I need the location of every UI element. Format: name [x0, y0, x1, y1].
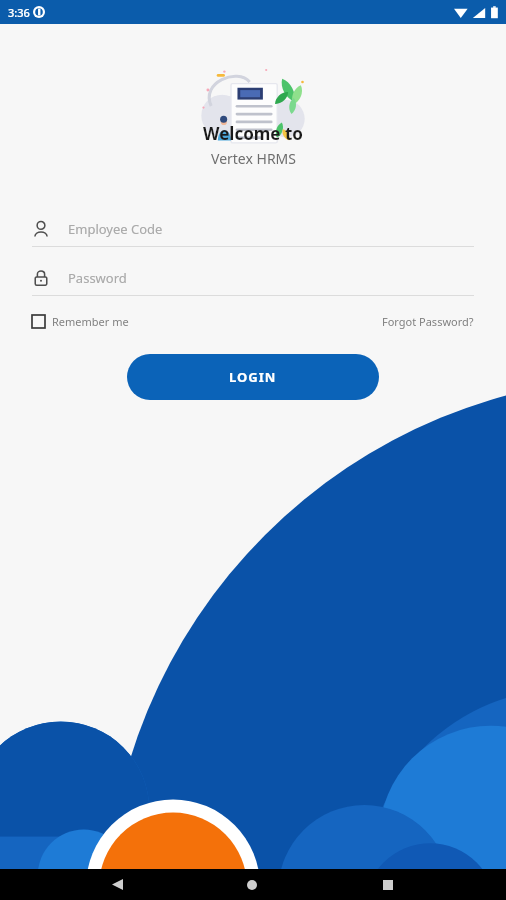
- staticText: Employee Code: [68, 220, 163, 238]
- button[interactable]: Recent apps: [370, 869, 406, 900]
- button[interactable]: Home: [234, 869, 270, 900]
- staticText: 3:36: [8, 5, 30, 20]
- button[interactable]: Remember me: [32, 314, 129, 329]
- button[interactable]: Password: [32, 261, 474, 296]
- staticText: Remember me: [52, 314, 129, 329]
- staticText: Forgot Password?: [382, 314, 474, 329]
- staticText: Password: [68, 269, 127, 287]
- staticText: LOGIN: [229, 368, 277, 386]
- button[interactable]: Employee Code: [32, 212, 474, 247]
- button[interactable]: LOGIN: [127, 354, 379, 400]
- staticText: Welcome to: [203, 122, 303, 145]
- button[interactable]: Forgot Password?: [382, 314, 474, 329]
- staticText: Vertex HRMS: [211, 149, 296, 168]
- button[interactable]: Back: [99, 869, 135, 900]
